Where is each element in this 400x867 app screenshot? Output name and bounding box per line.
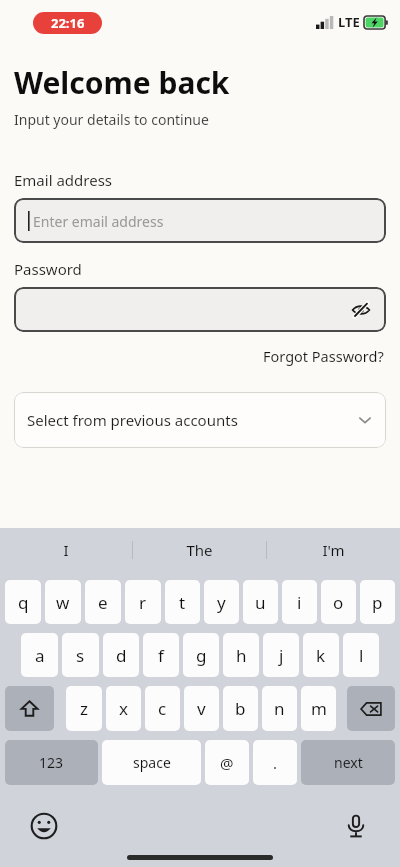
staticText: x bbox=[119, 697, 128, 720]
staticText: c bbox=[158, 697, 167, 720]
staticText: d bbox=[116, 644, 127, 667]
button[interactable]: p bbox=[360, 580, 395, 624]
button[interactable]: g bbox=[183, 633, 219, 677]
staticText: s bbox=[76, 644, 85, 667]
staticText: a bbox=[35, 644, 45, 667]
staticText: k bbox=[316, 644, 326, 667]
button[interactable]: c bbox=[145, 686, 180, 731]
button[interactable]: b bbox=[223, 686, 258, 731]
staticText: f bbox=[158, 644, 164, 667]
staticText: m bbox=[311, 697, 327, 720]
staticText: i bbox=[297, 591, 302, 614]
staticText: g bbox=[196, 644, 207, 667]
staticText: Password bbox=[14, 259, 82, 279]
staticText: space bbox=[133, 753, 171, 772]
button[interactable]: d bbox=[103, 633, 139, 677]
button[interactable]: k bbox=[303, 633, 339, 677]
staticText: Email address bbox=[14, 170, 113, 190]
button[interactable]: o bbox=[321, 580, 356, 624]
button[interactable]: t bbox=[165, 580, 200, 624]
button[interactable]: u bbox=[243, 580, 278, 624]
staticText: u bbox=[255, 591, 266, 614]
staticText: b bbox=[235, 697, 246, 720]
staticText: h bbox=[236, 644, 247, 667]
staticText: w bbox=[56, 591, 70, 614]
staticText: Input your details to continue bbox=[14, 110, 209, 129]
button[interactable]: n bbox=[262, 686, 297, 731]
button[interactable]: h bbox=[223, 633, 259, 677]
button[interactable]: Emoji bbox=[28, 810, 60, 842]
button[interactable]: space bbox=[102, 740, 201, 785]
staticText: e bbox=[98, 591, 108, 614]
staticText: . bbox=[273, 753, 278, 773]
button[interactable]: w bbox=[45, 580, 81, 624]
staticText: LTE bbox=[338, 13, 360, 31]
staticText: Enter email address bbox=[33, 212, 164, 231]
staticText: y bbox=[217, 591, 226, 614]
staticText: 123 bbox=[39, 753, 64, 772]
button[interactable]: j bbox=[263, 633, 299, 677]
button[interactable]: z bbox=[66, 686, 102, 731]
staticText: r bbox=[139, 591, 147, 614]
staticText: @ bbox=[220, 753, 234, 773]
button[interactable]: Forgot Password? bbox=[261, 344, 386, 368]
staticText: z bbox=[80, 697, 88, 720]
staticText: v bbox=[197, 697, 206, 720]
button[interactable]: I'm bbox=[267, 528, 400, 572]
staticText: j bbox=[279, 644, 284, 667]
button[interactable]: Voice input bbox=[340, 810, 372, 842]
button[interactable]: v bbox=[184, 686, 219, 731]
button[interactable]: Enter email address bbox=[14, 198, 386, 243]
button[interactable]: Backspace bbox=[347, 686, 395, 731]
staticText: n bbox=[274, 697, 285, 720]
button[interactable]: x bbox=[106, 686, 141, 731]
staticText: Forgot Password? bbox=[263, 346, 384, 366]
button[interactable]: 123 bbox=[5, 740, 98, 785]
button[interactable]: l bbox=[343, 633, 379, 677]
button[interactable]: Hide password bbox=[14, 287, 386, 332]
button[interactable]: r bbox=[125, 580, 161, 624]
staticText: Select from previous accounts bbox=[27, 410, 238, 430]
staticText: o bbox=[333, 591, 344, 614]
button[interactable]: next bbox=[301, 740, 395, 785]
button[interactable]: m bbox=[301, 686, 336, 731]
button[interactable]: q bbox=[5, 580, 41, 624]
staticText: p bbox=[372, 591, 383, 614]
staticText: I'm bbox=[322, 540, 345, 560]
staticText: t bbox=[179, 591, 186, 614]
button[interactable]: s bbox=[62, 633, 99, 677]
staticText: Welcome back bbox=[14, 62, 230, 103]
button[interactable]: e bbox=[85, 580, 121, 624]
staticText: next bbox=[334, 753, 363, 772]
button[interactable]: a bbox=[21, 633, 58, 677]
staticText: l bbox=[359, 644, 364, 667]
button[interactable]: The bbox=[133, 528, 266, 572]
staticText: I bbox=[63, 540, 69, 560]
button[interactable]: f bbox=[143, 633, 179, 677]
button[interactable]: Hide password bbox=[348, 297, 374, 323]
button[interactable]: Shift bbox=[5, 686, 54, 731]
button[interactable]: i bbox=[282, 580, 317, 624]
staticText: 22:16 bbox=[51, 14, 85, 32]
staticText: q bbox=[18, 591, 29, 614]
button[interactable]: I bbox=[0, 528, 132, 572]
button[interactable]: @ bbox=[205, 740, 249, 785]
button[interactable]: y bbox=[204, 580, 239, 624]
staticText: The bbox=[186, 540, 213, 560]
button[interactable]: Select from previous accounts bbox=[14, 392, 386, 448]
button[interactable]: . bbox=[253, 740, 297, 785]
